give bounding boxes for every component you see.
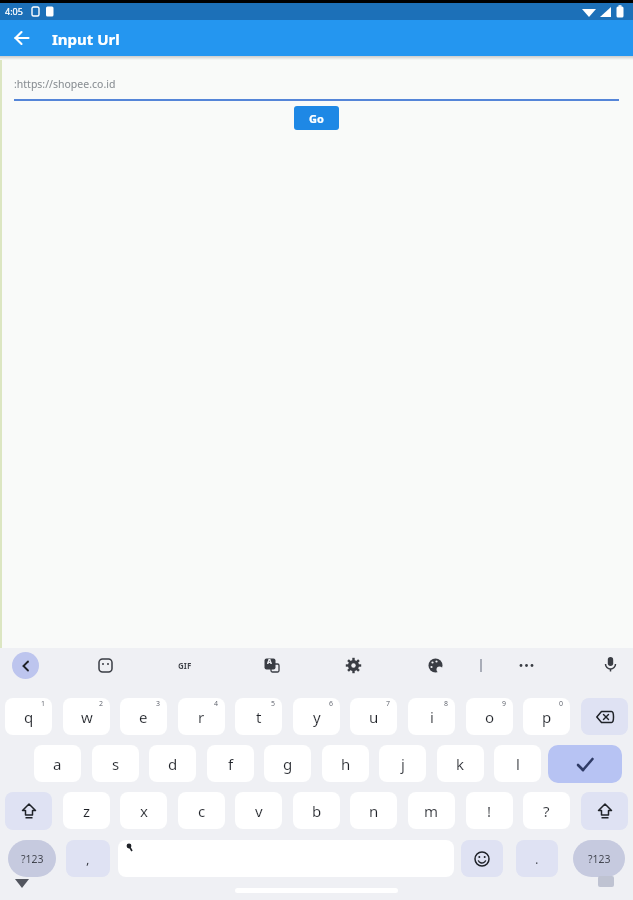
staticText: ! <box>487 801 492 821</box>
button[interactable]: g <box>264 745 311 782</box>
button[interactable]: p <box>523 698 570 735</box>
staticText: m <box>424 801 439 821</box>
button[interactable]: k <box>437 745 484 782</box>
button[interactable]: a <box>34 745 81 782</box>
staticText: f <box>228 754 234 774</box>
staticText: 9 <box>502 699 507 709</box>
button[interactable] <box>601 655 620 674</box>
staticText: h <box>341 754 351 774</box>
staticText: GIF <box>178 660 192 671</box>
staticText: a <box>53 754 62 774</box>
staticText: c <box>198 801 206 821</box>
staticText: 3 <box>156 699 161 709</box>
button[interactable]: y <box>293 698 340 735</box>
staticText: w <box>81 707 93 727</box>
staticText: 5 <box>271 699 276 709</box>
staticText: :https://shopee.co.id <box>14 77 116 91</box>
button[interactable] <box>581 698 628 735</box>
staticText: b <box>312 801 322 821</box>
staticText: 4:05 <box>5 5 23 17</box>
staticText: p <box>542 707 552 727</box>
staticText: u <box>369 707 379 727</box>
button[interactable] <box>96 656 115 675</box>
button[interactable] <box>344 656 363 675</box>
staticText: z <box>83 801 91 821</box>
button[interactable]: ? <box>523 792 570 829</box>
button[interactable]: o <box>466 698 513 735</box>
button[interactable] <box>426 656 445 675</box>
staticText: 4 <box>214 699 219 709</box>
staticText: 6 <box>329 699 334 709</box>
staticText: x <box>140 801 148 821</box>
button[interactable]: h <box>322 745 369 782</box>
button[interactable]: GIF <box>172 656 198 675</box>
staticText: e <box>139 707 148 727</box>
staticText: 2 <box>99 699 104 709</box>
staticText: q <box>24 707 34 727</box>
button[interactable] <box>517 656 536 675</box>
button[interactable]: f <box>207 745 254 782</box>
staticText: 8 <box>444 699 449 709</box>
staticText: Go <box>309 111 324 126</box>
button[interactable]: . <box>516 840 558 877</box>
staticText: s <box>112 754 120 774</box>
staticText: ?123 <box>588 852 611 866</box>
button[interactable]: x <box>120 792 167 829</box>
staticText: A <box>267 657 272 667</box>
button[interactable]: e <box>120 698 167 735</box>
button[interactable]: ?123 <box>573 840 625 877</box>
staticText: n <box>369 801 379 821</box>
staticText: 1 <box>41 699 46 709</box>
button[interactable]: q <box>5 698 52 735</box>
staticText: o <box>485 707 495 727</box>
button[interactable]: w <box>63 698 110 735</box>
staticText: r <box>198 707 205 727</box>
button[interactable] <box>5 792 52 830</box>
button[interactable] <box>12 652 39 679</box>
staticText: g <box>283 754 293 774</box>
button[interactable]: n <box>350 792 397 829</box>
button[interactable]: Go <box>294 106 339 130</box>
staticText: 0 <box>559 699 564 709</box>
staticText: . <box>535 850 539 868</box>
button[interactable]: t <box>235 698 282 735</box>
staticText: v <box>255 801 263 821</box>
staticText: k <box>456 754 465 774</box>
staticText: ? <box>543 801 550 821</box>
button[interactable]: b <box>293 792 340 829</box>
button[interactable]: j <box>379 745 426 782</box>
button[interactable]: z <box>63 792 110 829</box>
staticText: l <box>516 754 520 774</box>
button[interactable]: u <box>350 698 397 735</box>
button[interactable]: c <box>178 792 225 829</box>
staticText: j <box>401 754 405 774</box>
button[interactable] <box>6 22 38 54</box>
staticText: d <box>168 754 178 774</box>
staticText: ?123 <box>21 852 44 866</box>
button[interactable]: d <box>149 745 196 782</box>
staticText: y <box>313 707 321 727</box>
button[interactable]: r <box>178 698 225 735</box>
staticText: , <box>86 850 90 868</box>
button[interactable]: ! <box>466 792 513 829</box>
button[interactable]: , <box>66 840 110 877</box>
staticText: t <box>256 707 262 727</box>
button[interactable] <box>548 745 622 783</box>
button[interactable]: i <box>408 698 455 735</box>
button[interactable] <box>461 840 503 877</box>
staticText: i <box>430 707 434 727</box>
staticText: 7 <box>386 699 391 709</box>
button[interactable]: s <box>92 745 139 782</box>
button[interactable]: m <box>408 792 455 829</box>
button[interactable] <box>118 840 454 877</box>
button[interactable]: A <box>262 656 281 675</box>
button[interactable]: l <box>494 745 541 782</box>
button[interactable] <box>581 792 628 830</box>
button[interactable]: ?123 <box>8 840 56 877</box>
staticText: Input Url <box>52 29 120 49</box>
button[interactable]: v <box>235 792 282 829</box>
